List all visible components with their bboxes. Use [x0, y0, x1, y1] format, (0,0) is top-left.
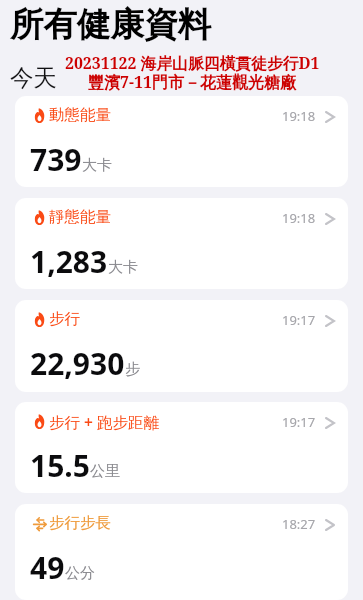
- staticText: 步行步長: [49, 513, 111, 533]
- staticText: 20231122 海岸山脈四橫貫徒步行D1: [65, 52, 320, 74]
- button[interactable]: 步行: [15, 300, 348, 392]
- staticText: 步行 + 跑步距離: [49, 411, 159, 432]
- staticText: 公分: [65, 564, 95, 583]
- staticText: 公里: [90, 462, 120, 481]
- staticText: 18:27: [282, 515, 316, 533]
- staticText: 49: [30, 547, 65, 588]
- staticText: 739: [30, 139, 82, 180]
- staticText: 15.5: [30, 445, 90, 486]
- staticText: 19:18: [282, 209, 316, 227]
- staticText: 豐濱7-11門市－花蓮觀光糖廠: [88, 71, 297, 93]
- staticText: 大卡: [82, 156, 112, 175]
- staticText: 19:18: [282, 107, 316, 125]
- staticText: 今天: [10, 63, 57, 93]
- button[interactable]: 步行 + 跑步距離: [15, 402, 348, 493]
- staticText: 19:17: [282, 311, 316, 329]
- button[interactable]: 步行步長: [15, 504, 348, 600]
- button[interactable]: 靜態能量: [15, 198, 348, 289]
- staticText: 步行: [49, 309, 80, 329]
- staticText: 22,930: [30, 343, 125, 384]
- staticText: 步: [125, 360, 140, 379]
- staticText: 大卡: [108, 258, 138, 277]
- staticText: 所有健康資料: [10, 4, 211, 46]
- staticText: 靜態能量: [49, 207, 111, 227]
- button[interactable]: 動態能量: [15, 96, 348, 187]
- staticText: 19:17: [282, 413, 316, 431]
- staticText: 1,283: [30, 241, 108, 282]
- staticText: 動態能量: [49, 105, 111, 125]
